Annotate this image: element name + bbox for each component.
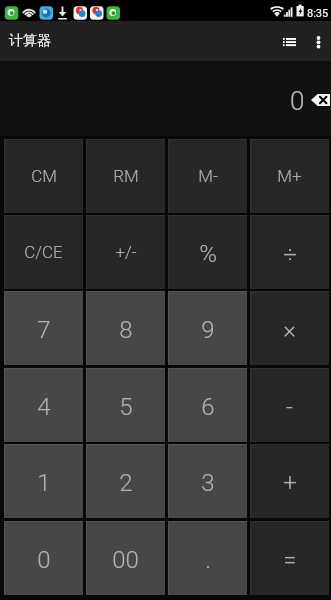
button[interactable]: = — [250, 521, 329, 595]
staticText: 5 — [119, 393, 133, 421]
button[interactable]: 4 — [4, 368, 83, 442]
staticText: 计算器 — [9, 32, 51, 50]
button[interactable]: 2 — [86, 444, 165, 518]
staticText: 6 — [201, 393, 215, 421]
button[interactable]: 9 — [168, 291, 247, 365]
staticText: M- — [198, 166, 218, 186]
staticText: 0 — [290, 86, 305, 116]
staticText: 8 — [119, 316, 133, 344]
staticText: % — [199, 240, 217, 268]
staticText: 2 — [119, 469, 133, 497]
staticText: + — [283, 469, 297, 497]
button[interactable]: Delete — [311, 94, 330, 106]
staticText: = — [283, 546, 297, 574]
button[interactable]: % — [168, 215, 247, 289]
button[interactable]: + — [250, 444, 329, 518]
button[interactable]: 0 — [4, 521, 83, 595]
button[interactable]: - — [250, 368, 329, 442]
button[interactable]: M- — [168, 139, 247, 213]
staticText: × — [283, 316, 296, 344]
staticText: ÷ — [283, 240, 297, 268]
button[interactable]: C/CE — [4, 215, 83, 289]
staticText: 0 — [37, 546, 51, 574]
button[interactable]: × — [250, 291, 329, 365]
staticText: 4 — [37, 393, 51, 421]
button[interactable]: 7 — [4, 291, 83, 365]
staticText: 1 — [37, 469, 51, 497]
button[interactable]: ÷ — [250, 215, 329, 289]
button[interactable]: 6 — [168, 368, 247, 442]
button[interactable]: 5 — [86, 368, 165, 442]
staticText: - — [286, 393, 293, 421]
staticText: 7 — [37, 316, 51, 344]
button[interactable]: 00 — [86, 521, 165, 595]
staticText: RM — [113, 166, 139, 186]
button[interactable]: More options — [306, 30, 331, 55]
button[interactable]: CM — [4, 139, 83, 213]
button[interactable]: History — [271, 24, 307, 60]
staticText: +/- — [115, 242, 137, 262]
button[interactable]: +/- — [86, 215, 165, 289]
staticText: 8:35 — [307, 7, 329, 20]
button[interactable]: M+ — [250, 139, 329, 213]
staticText: 00 — [112, 546, 139, 574]
staticText: 9 — [201, 316, 215, 344]
staticText: M+ — [277, 166, 302, 186]
staticText: C/CE — [24, 242, 63, 262]
staticText: 3 — [201, 469, 215, 497]
button[interactable]: 8 — [86, 291, 165, 365]
staticText: . — [205, 546, 211, 574]
button[interactable]: 1 — [4, 444, 83, 518]
button[interactable]: 3 — [168, 444, 247, 518]
button[interactable]: RM — [86, 139, 165, 213]
button[interactable]: . — [168, 521, 247, 595]
staticText: CM — [31, 166, 57, 186]
